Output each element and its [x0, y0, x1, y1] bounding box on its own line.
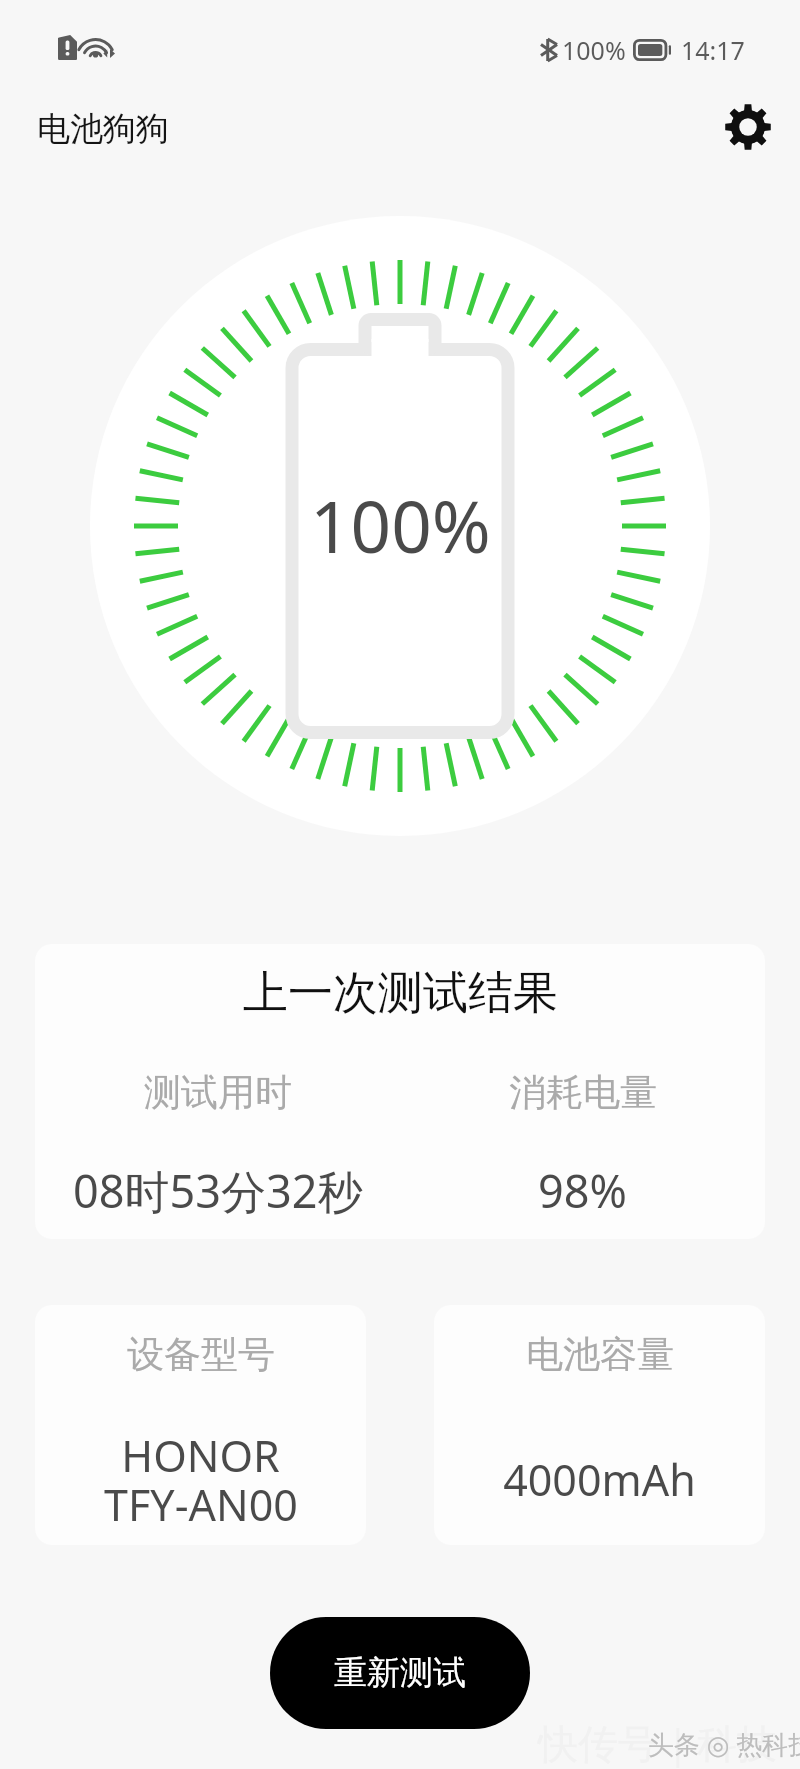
staticText: 快传号｜科技 — [538, 1719, 778, 1769]
staticText: 消耗电量 — [509, 1069, 657, 1116]
button[interactable]: Settings — [723, 102, 773, 152]
staticText: 电池狗狗 — [37, 108, 169, 150]
button[interactable]: 上一次测试结果 — [35, 944, 765, 1239]
button[interactable]: 电池容量 — [434, 1305, 765, 1545]
staticText: 设备型号 — [127, 1331, 275, 1378]
staticText: 4000mAh — [503, 1450, 696, 1509]
staticText: 100% — [562, 33, 626, 67]
staticText: 08时53分32秒 — [73, 1160, 363, 1221]
staticText: 电池容量 — [526, 1331, 674, 1378]
staticText: TFY-AN00 — [104, 1475, 298, 1534]
staticText: 上一次测试结果 — [243, 965, 558, 1022]
button[interactable]: 重新测试 — [270, 1617, 530, 1729]
staticText: 头条 ◎ 热科技 — [648, 1726, 800, 1762]
staticText: HONOR — [121, 1426, 280, 1485]
button[interactable]: 设备型号 — [35, 1305, 366, 1545]
staticText: 100% — [310, 477, 491, 574]
staticText: 98% — [538, 1160, 627, 1221]
staticText: 重新测试 — [334, 1652, 466, 1694]
staticText: 14:17 — [681, 33, 745, 67]
staticText: 测试用时 — [144, 1069, 292, 1116]
